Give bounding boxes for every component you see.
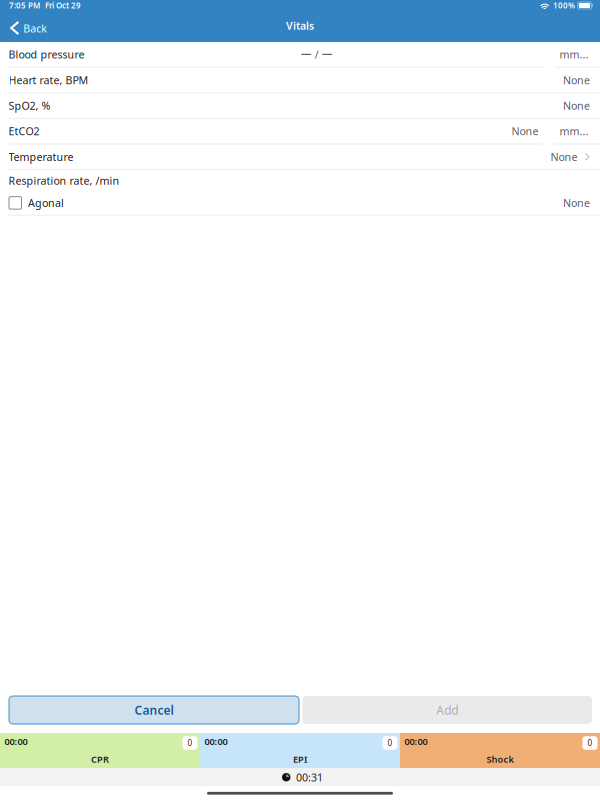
staticText: None <box>551 150 578 164</box>
staticText: 00:31 <box>296 770 323 784</box>
staticText: EPI <box>293 753 307 765</box>
button[interactable]: Back <box>0 11 55 41</box>
staticText: Heart rate, BPM <box>8 73 88 87</box>
button[interactable]: Agonal <box>0 191 600 215</box>
staticText: Add <box>436 702 458 718</box>
staticText: CPR <box>91 753 109 765</box>
staticText: Agonal <box>28 196 64 210</box>
button[interactable]: SpO2, % <box>0 93 600 118</box>
staticText: 00:00 <box>4 735 27 748</box>
staticText: None <box>563 196 590 210</box>
button[interactable]: mm... <box>544 119 600 144</box>
staticText: EtCO2 <box>8 124 39 138</box>
staticText: Blood pressure <box>8 47 84 61</box>
button[interactable]: 00:00 <box>200 733 400 768</box>
button[interactable]: EtCO2 <box>0 119 544 144</box>
staticText: 7:05 PM <box>9 0 40 11</box>
button[interactable]: 00:00 <box>0 733 200 768</box>
staticText: 00:00 <box>404 735 427 748</box>
staticText: 100% <box>553 0 575 11</box>
button[interactable]: Temperature <box>0 144 600 169</box>
staticText: 0 <box>187 738 192 748</box>
staticText: Fri Oct 29 <box>45 0 81 11</box>
button[interactable]: Heart rate, BPM <box>0 68 600 92</box>
staticText: 0 <box>587 738 592 748</box>
staticText: Shock <box>486 753 513 765</box>
staticText: Vitals <box>286 18 314 33</box>
staticText: None <box>563 98 590 113</box>
staticText: 00:00 <box>204 735 227 748</box>
staticText: mm... <box>559 47 588 61</box>
button[interactable]: mm... <box>544 42 600 67</box>
button[interactable]: Blood pressure <box>0 42 544 67</box>
staticText: Cancel <box>134 702 173 718</box>
button[interactable]: Add <box>302 696 592 724</box>
staticText: Back <box>23 21 47 35</box>
button[interactable]: Cancel <box>9 696 299 724</box>
staticText: Respiration rate, /min <box>8 173 119 188</box>
staticText: None <box>511 124 538 138</box>
staticText: None <box>563 73 590 87</box>
staticText: / <box>315 47 319 61</box>
staticText: mm... <box>559 124 588 138</box>
staticText: 0 <box>387 738 392 748</box>
button[interactable]: 00:00 <box>400 733 600 768</box>
staticText: Temperature <box>8 150 73 164</box>
staticText: SpO2, % <box>8 98 50 113</box>
